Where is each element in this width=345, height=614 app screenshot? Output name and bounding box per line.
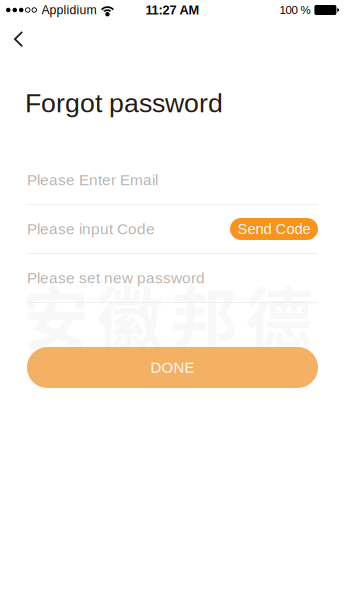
button[interactable]: Send Code (230, 218, 318, 240)
staticText: Send Code (237, 221, 310, 237)
staticText: Forgot password (25, 88, 223, 118)
button[interactable]: Back (0, 20, 39, 56)
staticText: Please input Code (27, 220, 155, 237)
staticText: Applidium (41, 3, 96, 17)
button[interactable]: DONE (27, 347, 318, 388)
staticText: 徽 (96, 266, 163, 362)
staticText: 德 (245, 266, 312, 362)
staticText: Please set new password (27, 269, 205, 286)
staticText: 100 % (279, 4, 310, 16)
staticText: 邦 (171, 266, 238, 362)
staticText: DONE (150, 359, 194, 376)
staticText: 11:27 AM (145, 3, 199, 17)
staticText: 安 (22, 266, 89, 362)
staticText: Please Enter Email (27, 171, 158, 188)
